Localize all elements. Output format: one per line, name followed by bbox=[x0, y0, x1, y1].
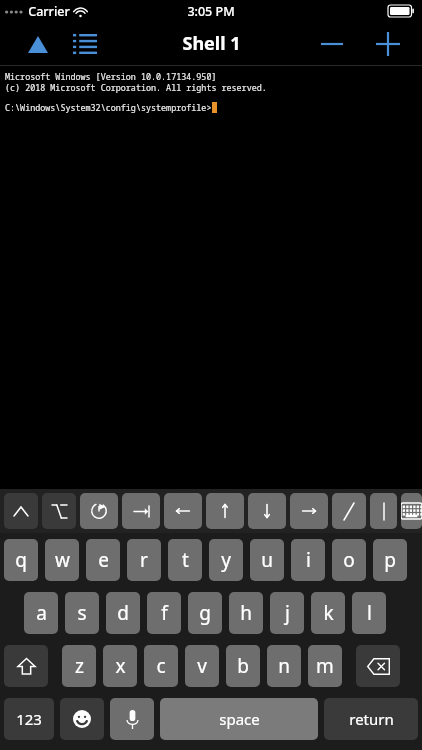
button[interactable]: d bbox=[106, 592, 140, 634]
button[interactable]: j bbox=[270, 592, 304, 634]
button[interactable]: m bbox=[308, 645, 342, 687]
staticText: s bbox=[77, 600, 87, 626]
staticText: l bbox=[367, 600, 372, 626]
button[interactable]: pipe bbox=[370, 493, 397, 529]
staticText: m bbox=[316, 653, 334, 679]
button[interactable]: u bbox=[250, 539, 284, 581]
button[interactable]: s bbox=[65, 592, 99, 634]
button[interactable]: r bbox=[127, 539, 161, 581]
button[interactable]: e bbox=[86, 539, 120, 581]
staticText: w bbox=[55, 547, 70, 573]
button[interactable]: t bbox=[168, 539, 202, 581]
staticText: 123 bbox=[16, 709, 42, 729]
button[interactable]: f bbox=[147, 592, 181, 634]
button[interactable]: tab bbox=[122, 493, 160, 529]
button[interactable]: left bbox=[164, 493, 202, 529]
button[interactable]: k bbox=[311, 592, 345, 634]
staticText: r bbox=[140, 547, 148, 573]
staticText: u bbox=[261, 547, 273, 573]
staticText: e bbox=[98, 547, 109, 573]
staticText: o bbox=[343, 547, 355, 573]
button[interactable]: ctrl bbox=[4, 493, 38, 529]
staticText: c bbox=[156, 653, 166, 679]
staticText: q bbox=[15, 547, 27, 573]
button[interactable]: List bbox=[67, 26, 103, 62]
button[interactable]: b bbox=[226, 645, 260, 687]
button[interactable]: i bbox=[291, 539, 325, 581]
button[interactable]: a bbox=[24, 592, 58, 634]
button[interactable]: h bbox=[229, 592, 263, 634]
staticText: h bbox=[240, 600, 252, 626]
staticText: return bbox=[349, 709, 394, 729]
button[interactable]: l bbox=[352, 592, 386, 634]
button[interactable]: n bbox=[267, 645, 301, 687]
button[interactable]: w bbox=[45, 539, 79, 581]
staticText: f bbox=[161, 600, 168, 626]
button[interactable]: alt bbox=[42, 493, 76, 529]
button[interactable]: Send bbox=[20, 26, 56, 62]
button[interactable]: down bbox=[248, 493, 286, 529]
button[interactable]: g bbox=[188, 592, 222, 634]
staticText: z bbox=[75, 653, 84, 679]
button[interactable]: Shift bbox=[4, 645, 48, 687]
staticText: y bbox=[221, 547, 231, 573]
button[interactable]: up bbox=[206, 493, 244, 529]
staticText: Carrier bbox=[28, 3, 70, 20]
button[interactable]: o bbox=[332, 539, 366, 581]
button[interactable]: 123 bbox=[4, 698, 54, 740]
button[interactable]: Emoji bbox=[60, 698, 104, 740]
button[interactable]: q bbox=[4, 539, 38, 581]
staticText: n bbox=[278, 653, 290, 679]
button[interactable]: kbd bbox=[401, 493, 422, 529]
button[interactable]: space bbox=[160, 698, 318, 740]
button[interactable]: p bbox=[373, 539, 407, 581]
button[interactable]: c bbox=[144, 645, 178, 687]
staticText: C:\Windows\System32\config\systemprofile… bbox=[5, 102, 212, 113]
staticText: Shell 1 bbox=[182, 31, 241, 56]
button[interactable]: x bbox=[103, 645, 137, 687]
button[interactable]: Delete bbox=[356, 645, 400, 687]
staticText: space bbox=[219, 709, 260, 729]
staticText: Microsoft Windows [Version 10.0.17134.95… bbox=[5, 71, 217, 82]
staticText: k bbox=[323, 600, 334, 626]
staticText: p bbox=[384, 547, 396, 573]
staticText: b bbox=[237, 653, 249, 679]
staticText: d bbox=[117, 600, 129, 626]
staticText: (c) 2018 Microsoft Corporation. All righ… bbox=[5, 82, 267, 93]
staticText: g bbox=[199, 600, 211, 626]
button[interactable]: v bbox=[185, 645, 219, 687]
staticText: t bbox=[182, 547, 189, 573]
staticText: i bbox=[306, 547, 311, 573]
button[interactable]: Remove shell bbox=[312, 24, 352, 64]
staticText: a bbox=[36, 600, 47, 626]
staticText: x bbox=[115, 653, 126, 679]
button[interactable]: hist bbox=[80, 493, 118, 529]
button[interactable]: y bbox=[209, 539, 243, 581]
button[interactable]: z bbox=[62, 645, 96, 687]
button[interactable]: return bbox=[324, 698, 418, 740]
button[interactable]: right bbox=[290, 493, 328, 529]
button[interactable]: Add shell bbox=[368, 24, 408, 64]
staticText: j bbox=[285, 600, 290, 626]
button[interactable]: Dictate bbox=[110, 698, 154, 740]
staticText: v bbox=[197, 653, 207, 679]
staticText: 3:05 PM bbox=[187, 3, 235, 20]
button[interactable]: slash bbox=[332, 493, 366, 529]
